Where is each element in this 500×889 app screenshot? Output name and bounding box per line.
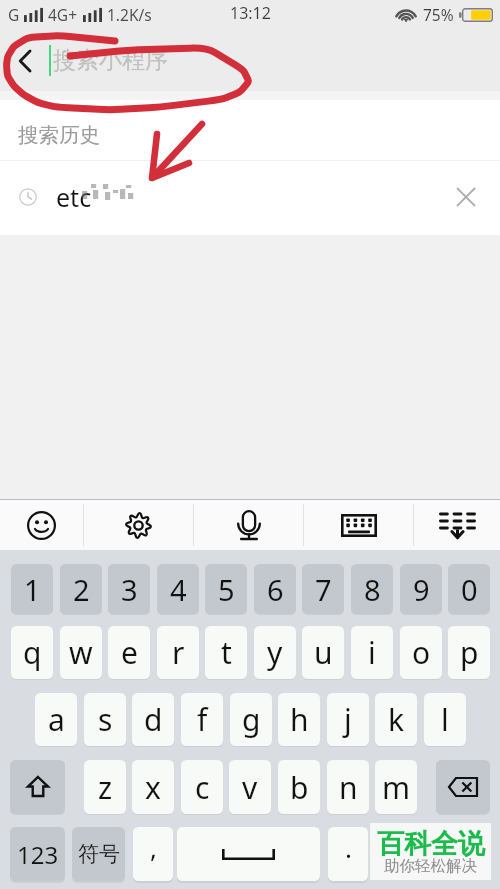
button[interactable]: 9 bbox=[400, 564, 442, 614]
staticText: f bbox=[197, 699, 208, 740]
staticText: 百科全说 bbox=[377, 827, 485, 861]
button[interactable]: Backspace bbox=[436, 760, 490, 814]
button[interactable]: 1 bbox=[11, 564, 53, 614]
staticText: r bbox=[172, 632, 185, 673]
staticText: o bbox=[412, 632, 431, 673]
button[interactable]: l bbox=[424, 693, 466, 746]
button[interactable]: c bbox=[181, 760, 223, 814]
button[interactable]: Settings bbox=[84, 500, 193, 550]
button[interactable]: Shift bbox=[10, 760, 65, 814]
button[interactable]: 4 bbox=[157, 564, 199, 614]
button[interactable]: 8 bbox=[351, 564, 393, 614]
staticText: q bbox=[23, 632, 42, 673]
button[interactable]: . bbox=[328, 827, 368, 881]
button[interactable]: h bbox=[278, 693, 320, 746]
button[interactable]: Hide keyboard bbox=[414, 500, 500, 550]
button[interactable]: 0 bbox=[448, 564, 490, 614]
staticText: i bbox=[368, 632, 376, 673]
button[interactable]: 符号 bbox=[72, 827, 125, 881]
staticText: 5 bbox=[218, 570, 235, 609]
button[interactable]: 2 bbox=[60, 564, 102, 614]
staticText: j bbox=[344, 699, 352, 740]
staticText: g bbox=[242, 699, 261, 740]
staticText: t bbox=[221, 632, 232, 673]
staticText: a bbox=[48, 699, 65, 740]
staticText: m bbox=[382, 767, 411, 808]
button[interactable]: f bbox=[181, 693, 223, 746]
button[interactable]: z bbox=[84, 760, 126, 814]
staticText: 4 bbox=[170, 570, 187, 609]
button[interactable]: Voice input bbox=[194, 500, 303, 550]
button[interactable]: v bbox=[229, 760, 271, 814]
staticText: 符号 bbox=[78, 841, 120, 867]
staticText: z bbox=[98, 767, 113, 808]
button[interactable]: s bbox=[84, 693, 126, 746]
button[interactable]: y bbox=[254, 626, 296, 679]
button[interactable]: j bbox=[327, 693, 369, 746]
staticText: 0 bbox=[461, 570, 478, 609]
staticText: y bbox=[267, 632, 283, 673]
button[interactable]: a bbox=[35, 693, 77, 746]
button[interactable]: r bbox=[157, 626, 199, 679]
staticText: . bbox=[345, 830, 352, 865]
staticText: c bbox=[195, 767, 210, 808]
staticText: 1 bbox=[24, 570, 41, 609]
staticText: w bbox=[69, 632, 93, 673]
button[interactable]: u bbox=[302, 626, 344, 679]
staticText: p bbox=[460, 632, 479, 673]
staticText: 搜索历史 bbox=[18, 122, 100, 148]
button[interactable]: 7 bbox=[302, 564, 344, 614]
staticText: 4G+ bbox=[48, 4, 78, 25]
staticText: 助你轻松解决 bbox=[384, 856, 477, 876]
staticText: b bbox=[290, 767, 309, 808]
staticText: 6 bbox=[267, 570, 284, 609]
button[interactable]: 6 bbox=[254, 564, 296, 614]
button[interactable]: 123 bbox=[10, 827, 65, 881]
button[interactable]: Delete bbox=[447, 178, 484, 215]
button[interactable]: 5 bbox=[205, 564, 247, 614]
staticText: 搜索小程序 bbox=[53, 46, 168, 75]
staticText: 13:12 bbox=[230, 2, 271, 24]
staticText: u bbox=[314, 632, 333, 673]
staticText: e bbox=[121, 632, 138, 673]
staticText: , bbox=[150, 830, 157, 865]
button[interactable]: d bbox=[132, 693, 174, 746]
staticText: h bbox=[290, 699, 309, 740]
staticText: etc bbox=[56, 180, 92, 214]
button[interactable]: g bbox=[230, 693, 272, 746]
button[interactable]: x bbox=[132, 760, 174, 814]
staticText: l bbox=[441, 699, 449, 740]
staticText: n bbox=[339, 767, 358, 808]
staticText: k bbox=[388, 699, 405, 740]
button[interactable]: i bbox=[351, 626, 393, 679]
button[interactable]: n bbox=[327, 760, 369, 814]
staticText: d bbox=[144, 699, 163, 740]
staticText: s bbox=[98, 699, 113, 740]
staticText: 123 bbox=[17, 838, 59, 871]
button[interactable]: q bbox=[11, 626, 53, 679]
button[interactable]: m bbox=[375, 760, 417, 814]
button[interactable]: k bbox=[375, 693, 417, 746]
button[interactable]: , bbox=[133, 827, 173, 881]
button[interactable]: w bbox=[60, 626, 102, 679]
staticText: G bbox=[8, 4, 20, 25]
staticText: v bbox=[242, 767, 258, 808]
button[interactable]: t bbox=[205, 626, 247, 679]
staticText: x bbox=[145, 767, 161, 808]
button[interactable]: Keyboard bbox=[304, 500, 413, 550]
staticText: 2 bbox=[73, 570, 90, 609]
button[interactable]: p bbox=[448, 626, 490, 679]
staticText: 1.2K/s bbox=[107, 4, 152, 25]
button[interactable]: o bbox=[400, 626, 442, 679]
button[interactable]: Space bbox=[177, 827, 320, 881]
staticText: 9 bbox=[413, 570, 430, 609]
button[interactable]: Emoji bbox=[0, 500, 83, 550]
button[interactable]: e bbox=[108, 626, 150, 679]
button[interactable]: etc bbox=[0, 160, 500, 235]
button[interactable]: 3 bbox=[108, 564, 150, 614]
staticText: 7 bbox=[315, 570, 332, 609]
staticText: 75% bbox=[423, 4, 454, 25]
button[interactable]: b bbox=[278, 760, 320, 814]
button[interactable]: Back bbox=[3, 39, 47, 83]
staticText: 8 bbox=[364, 570, 381, 609]
